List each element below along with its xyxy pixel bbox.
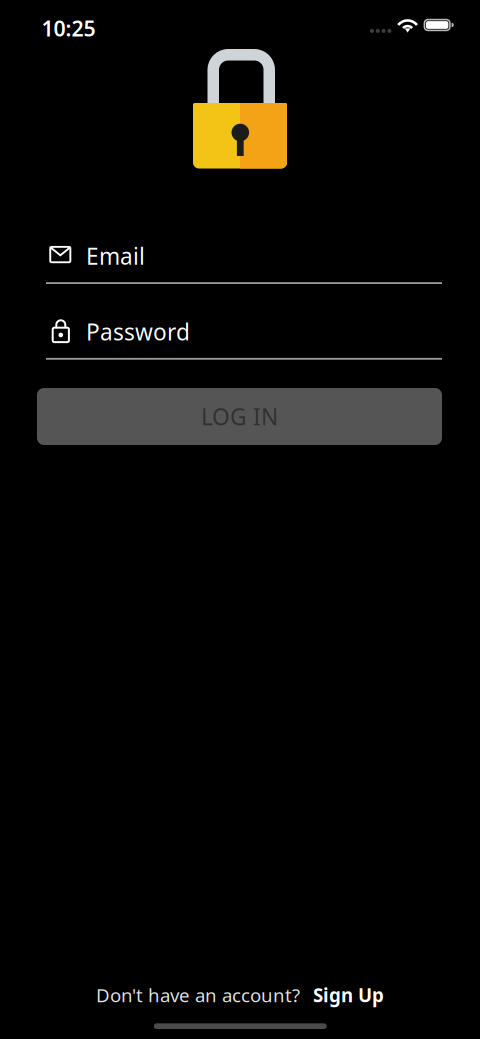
staticText: 10:25 <box>41 14 95 42</box>
button[interactable]: Email <box>46 246 442 286</box>
staticText: Don't have an account? <box>96 983 300 1007</box>
staticText: Sign Up <box>313 983 384 1007</box>
button[interactable]: Sign Up <box>313 978 384 1012</box>
staticText: Password <box>86 317 190 347</box>
button[interactable]: LOG IN <box>37 388 442 445</box>
button[interactable]: Password <box>46 322 442 362</box>
staticText: Email <box>86 241 145 271</box>
staticText: LOG IN <box>201 401 278 431</box>
